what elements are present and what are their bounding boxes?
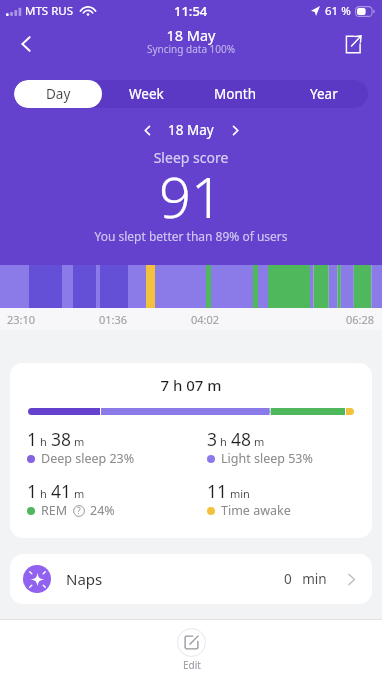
- staticText: Naps: [66, 569, 103, 589]
- staticText: 23:10: [7, 312, 36, 327]
- staticText: 48: [231, 427, 252, 451]
- staticText: h: [40, 434, 47, 449]
- staticText: 91: [0, 158, 382, 234]
- staticText: min: [230, 486, 250, 501]
- staticText: 11: [207, 479, 228, 503]
- button[interactable]: Back: [4, 22, 48, 66]
- staticText: Deep sleep 23%: [41, 450, 135, 467]
- staticText: h: [220, 434, 227, 449]
- staticText: ?: [77, 505, 81, 517]
- staticText: Year: [310, 85, 338, 103]
- button[interactable]: Day: [14, 80, 102, 108]
- staticText: Day: [46, 85, 71, 103]
- staticText: m: [254, 434, 265, 449]
- staticText: MTS RUS: [25, 3, 74, 19]
- staticText: 41: [51, 479, 72, 503]
- staticText: Week: [129, 85, 164, 103]
- staticText: m: [74, 434, 85, 449]
- staticText: 7 h 07 m: [10, 375, 372, 395]
- staticText: 61 %: [325, 3, 351, 19]
- staticText: 38: [51, 427, 72, 451]
- button[interactable]: Week: [102, 80, 190, 108]
- button[interactable]: Share: [330, 22, 374, 66]
- staticText: 04:02: [191, 312, 220, 327]
- staticText: h: [40, 486, 47, 501]
- staticText: Syncing data 100%: [0, 42, 382, 56]
- staticText: 01:36: [99, 312, 128, 327]
- button[interactable]: Month: [190, 80, 279, 108]
- button[interactable]: Year: [279, 80, 368, 108]
- staticText: m: [74, 486, 85, 501]
- staticText: Edit: [183, 658, 201, 672]
- button[interactable]: Previous day: [134, 117, 160, 143]
- staticText: REM: [41, 502, 68, 519]
- staticText: 1: [27, 427, 38, 451]
- button[interactable]: Naps: [10, 554, 372, 604]
- staticText: Month: [214, 85, 256, 103]
- button[interactable]: Edit: [177, 628, 206, 672]
- staticText: Sleep score: [0, 148, 382, 167]
- button[interactable]: Next day: [222, 117, 248, 143]
- staticText: 1: [27, 479, 38, 503]
- staticText: 3: [207, 427, 218, 451]
- staticText: Light sleep 53%: [221, 450, 313, 467]
- staticText: Time awake: [221, 502, 291, 519]
- staticText: 06:28: [346, 312, 375, 327]
- staticText: 18 May: [0, 25, 382, 45]
- staticText: 11:54: [174, 2, 208, 20]
- staticText: 18 May: [168, 121, 214, 139]
- staticText: 0 min: [284, 570, 327, 588]
- staticText: You slept better than 89% of users: [0, 228, 382, 244]
- staticText: 24%: [90, 502, 115, 519]
